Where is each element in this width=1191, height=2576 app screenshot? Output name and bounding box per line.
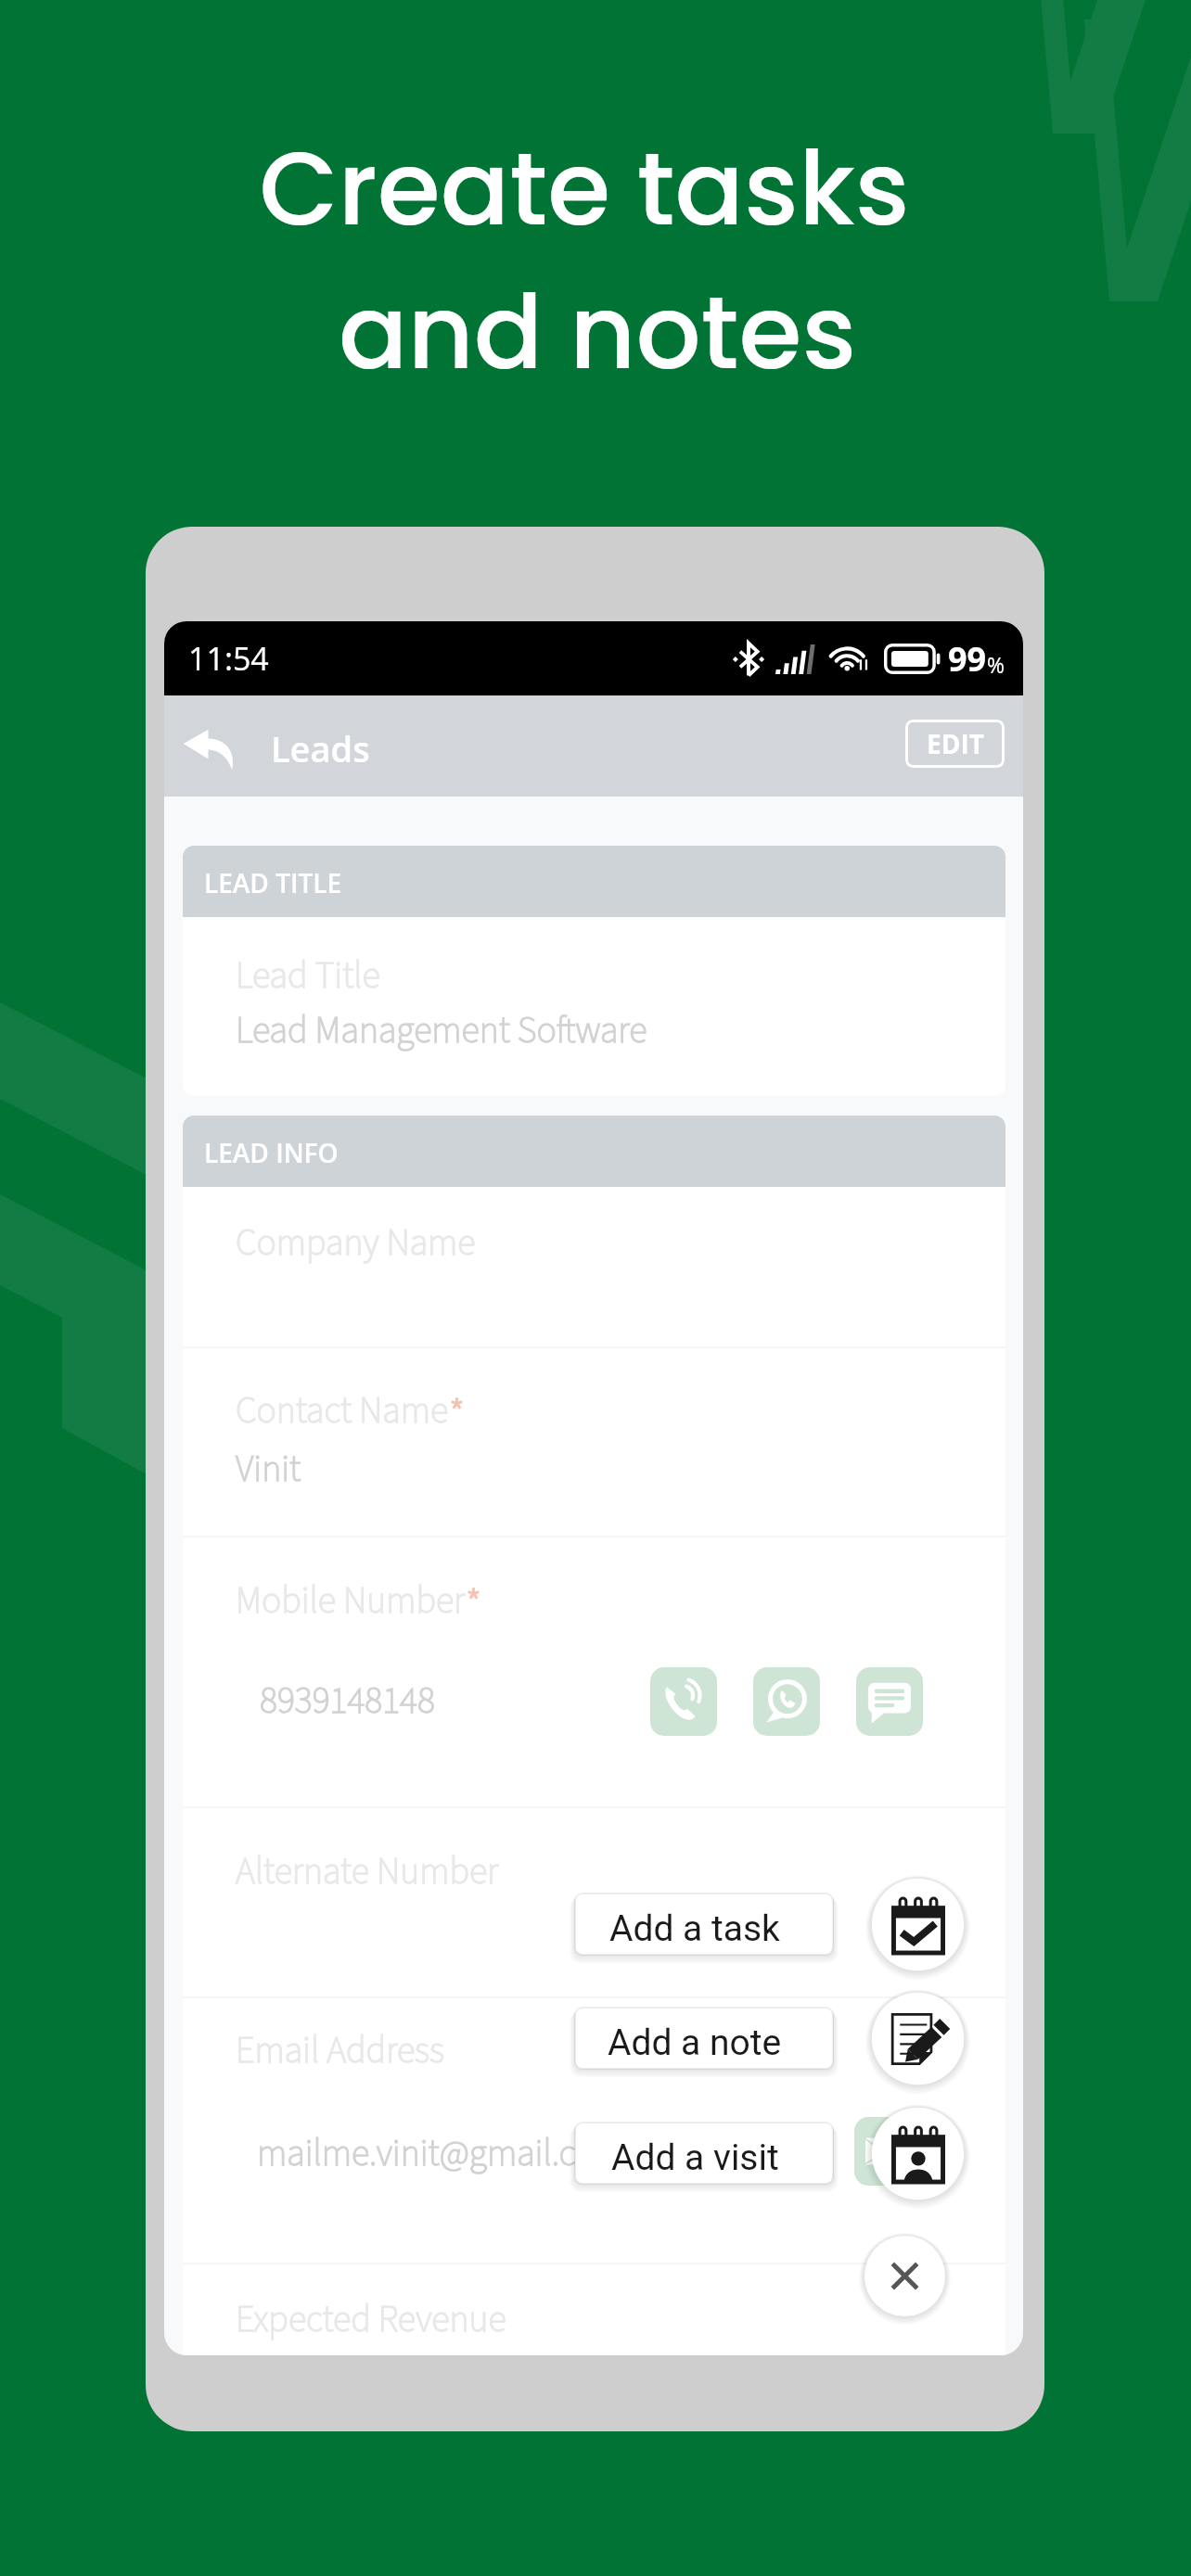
button[interactable]: Add a task (575, 1894, 833, 1955)
staticText: Alternate Number (236, 1845, 499, 1898)
staticText: LEAD INFO (204, 1135, 339, 1170)
staticText: Add a task (609, 1907, 780, 1950)
button[interactable]: WhatsApp (753, 1667, 820, 1736)
staticText: and notes (2, 261, 1191, 404)
button[interactable]: Add a note (575, 2008, 833, 2069)
button[interactable]: Call (650, 1667, 717, 1736)
staticText: Add a note (608, 2021, 782, 2064)
button[interactable]: Back (170, 708, 247, 784)
staticText: * (466, 1576, 481, 1635)
staticText: % (987, 650, 1005, 679)
button[interactable]: Close (859, 2230, 951, 2322)
staticText: 11:54 (188, 637, 269, 680)
staticText: Contact Name (236, 1384, 449, 1437)
staticText: 8939148148 (260, 1675, 435, 1728)
staticText: Leads (271, 724, 370, 772)
staticText: Mobile Number (236, 1575, 466, 1627)
button[interactable]: EDIT (905, 720, 1005, 768)
staticText: EDIT (927, 726, 984, 761)
button[interactable]: Message (856, 1667, 923, 1736)
button[interactable]: Add a note (865, 1986, 970, 2091)
staticText: Create tasks (0, 118, 1180, 261)
button[interactable]: Add a visit (575, 2123, 833, 2184)
button[interactable]: Email (854, 2117, 921, 2186)
staticText: Lead Title (236, 950, 380, 1002)
staticText: Expected Revenue (236, 2293, 506, 2346)
staticText: * (449, 1386, 465, 1445)
staticText: Add a visit (611, 2136, 779, 2179)
button[interactable]: Add a task (865, 1872, 970, 1977)
staticText: Lead Management Software (236, 1004, 647, 1057)
button[interactable]: Add a visit (865, 2101, 970, 2206)
staticText: 99 (948, 636, 987, 682)
staticText: LEAD TITLE (204, 865, 342, 900)
staticText: mailme.vinit@gmail.com (257, 2127, 625, 2180)
staticText: Email Address (236, 2024, 445, 2077)
staticText: Vinit (236, 1443, 301, 1496)
staticText: Company Name (236, 1217, 476, 1269)
